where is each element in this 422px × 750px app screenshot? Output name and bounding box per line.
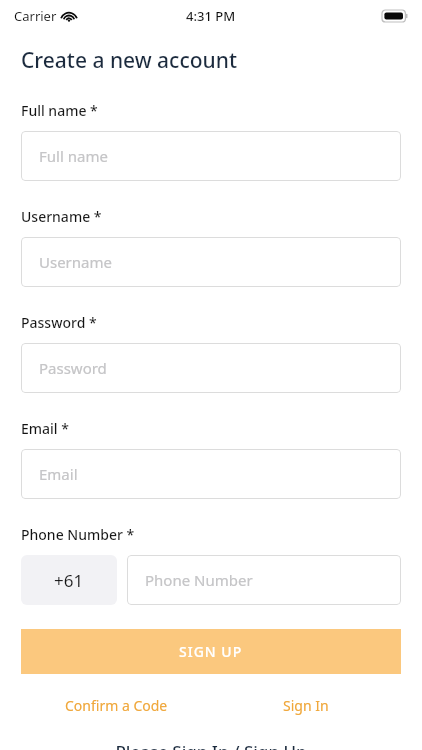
staticText: Email (39, 464, 78, 484)
staticText: Please Sign In / Sign Up (115, 740, 307, 750)
staticText: Password * (21, 313, 97, 332)
staticText: Full name (39, 146, 108, 166)
staticText: Full name * (21, 101, 98, 120)
button[interactable]: Phone Number (127, 555, 401, 605)
staticText: 4:31 PM (186, 7, 236, 25)
button[interactable]: Confirm a Code (21, 696, 211, 715)
staticText: Username (39, 252, 112, 272)
staticText: Phone Number * (21, 525, 135, 544)
staticText: +61 (54, 569, 84, 592)
button[interactable]: Password (21, 343, 401, 393)
staticText: Confirm a Code (65, 696, 168, 715)
staticText: Sign In (283, 696, 329, 715)
button[interactable]: Sign In (211, 696, 401, 715)
button[interactable]: SIGN UP (21, 629, 401, 674)
button[interactable]: Email (21, 449, 401, 499)
button[interactable]: +61 (21, 555, 117, 605)
staticText: Username * (21, 207, 102, 226)
staticText: Email * (21, 419, 69, 438)
staticText: Password (39, 358, 107, 378)
button[interactable]: Username (21, 237, 401, 287)
staticText: Create a new account (21, 46, 237, 75)
staticText: SIGN UP (179, 642, 243, 661)
staticText: Phone Number (145, 570, 253, 590)
staticText: Carrier (14, 7, 57, 25)
button[interactable]: Full name (21, 131, 401, 181)
